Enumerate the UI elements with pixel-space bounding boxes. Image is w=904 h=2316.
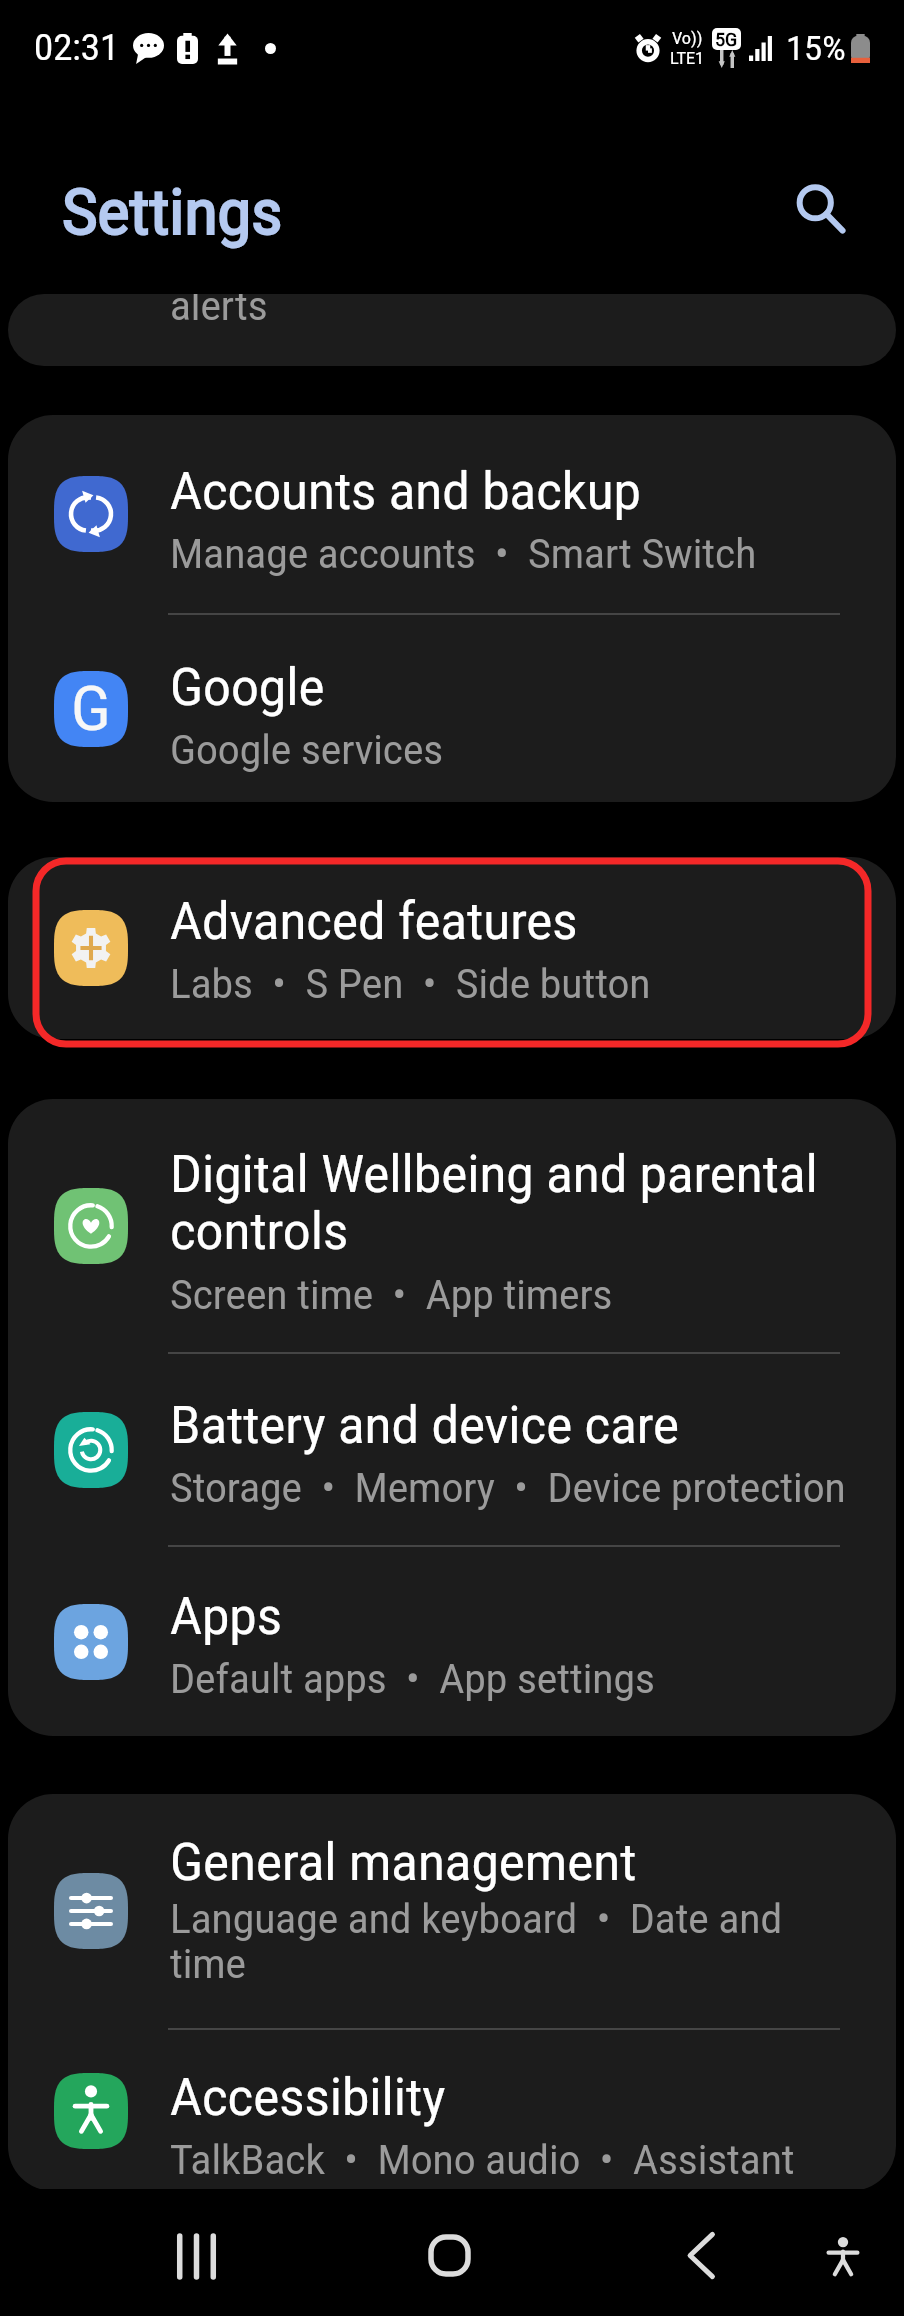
staticText: Google services bbox=[170, 726, 444, 773]
button[interactable]: Digital Wellbeing and parental controls bbox=[8, 1099, 896, 1352]
staticText: 15% bbox=[786, 28, 846, 68]
staticText: 02:31 bbox=[34, 27, 120, 69]
button[interactable]: Apps bbox=[8, 1547, 896, 1736]
staticText: Accessibility bbox=[170, 2067, 446, 2127]
button[interactable]: Search bbox=[778, 166, 864, 252]
staticText: alerts bbox=[170, 294, 268, 329]
staticText: Settings bbox=[62, 175, 283, 249]
staticText: Advanced features bbox=[170, 891, 578, 951]
staticText: Default apps • App settings bbox=[170, 1655, 655, 1702]
staticText: Labs • S Pen • Side button bbox=[170, 960, 651, 1007]
staticText: Manage accounts • Smart Switch bbox=[170, 530, 757, 577]
button[interactable]: Battery and device care bbox=[8, 1354, 896, 1545]
staticText: Vo)) bbox=[672, 28, 703, 48]
button[interactable]: Accessibility bbox=[800, 2214, 886, 2300]
staticText: General management bbox=[170, 1832, 637, 1892]
staticText: Screen time • App timers bbox=[170, 1271, 613, 1318]
staticText: Google bbox=[170, 657, 325, 717]
staticText: Digital Wellbeing and parental controls bbox=[170, 1144, 876, 1262]
button[interactable]: Recent apps bbox=[153, 2213, 239, 2299]
button[interactable]: Advanced features bbox=[8, 857, 896, 1039]
button[interactable]: General management bbox=[8, 1794, 896, 2028]
button[interactable]: G bbox=[8, 615, 896, 802]
staticText: LTE1 bbox=[670, 48, 705, 68]
staticText: Accounts and backup bbox=[170, 461, 641, 521]
button[interactable]: Accessibility bbox=[8, 2030, 896, 2191]
staticText: Battery and device care bbox=[170, 1395, 679, 1455]
button[interactable]: Home bbox=[404, 2210, 494, 2300]
staticText: Language and keyboard • Date and time bbox=[170, 1895, 850, 1988]
staticText: Apps bbox=[170, 1586, 283, 1646]
button[interactable]: Accounts and backup bbox=[8, 415, 896, 613]
staticText: Storage • Memory • Device protection bbox=[170, 1464, 846, 1511]
staticText: 5G bbox=[715, 28, 738, 50]
staticText: TalkBack • Mono audio • Assistant bbox=[170, 2136, 795, 2183]
button[interactable]: Back bbox=[658, 2212, 744, 2298]
staticText: G bbox=[71, 672, 111, 745]
